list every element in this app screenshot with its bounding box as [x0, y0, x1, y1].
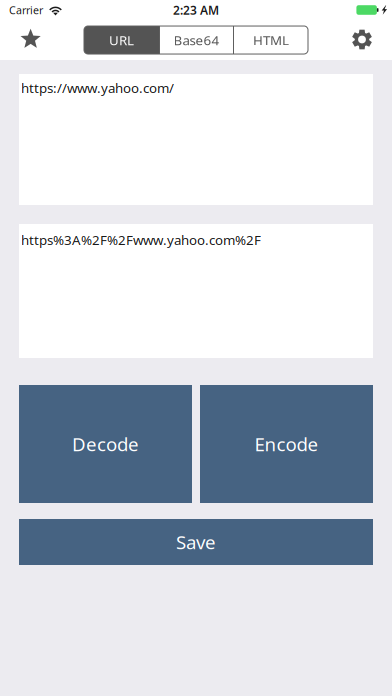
- staticText: Decode: [72, 432, 139, 456]
- button[interactable]: https%3A%2F%2Fwww.yahoo.com%2F: [19, 224, 373, 358]
- button[interactable]: Save: [19, 519, 373, 565]
- staticText: https%3A%2F%2Fwww.yahoo.com%2F: [21, 231, 261, 249]
- button[interactable]: HTML: [234, 26, 308, 54]
- button[interactable]: Decode: [19, 385, 192, 503]
- staticText: URL: [109, 31, 134, 49]
- staticText: https://www.yahoo.com/: [21, 79, 174, 97]
- button[interactable]: https://www.yahoo.com/: [19, 74, 373, 205]
- button[interactable]: URL: [84, 26, 159, 54]
- button[interactable]: Encode: [200, 385, 373, 503]
- staticText: Encode: [254, 432, 318, 456]
- button[interactable]: Settings: [335, 20, 389, 60]
- staticText: HTML: [253, 31, 289, 49]
- button[interactable]: Base64: [160, 26, 233, 54]
- button[interactable]: Favorites: [3, 20, 57, 60]
- staticText: Base64: [173, 31, 219, 49]
- staticText: Carrier: [9, 3, 43, 17]
- staticText: 2:23 AM: [173, 2, 219, 18]
- staticText: Save: [176, 530, 216, 554]
